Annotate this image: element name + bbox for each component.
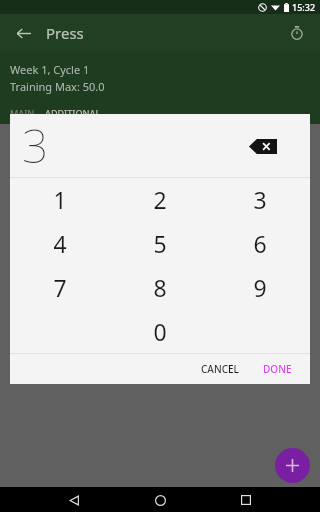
staticText: 8 — [153, 272, 167, 303]
staticText: 2 — [153, 184, 167, 215]
button[interactable]: 2 — [110, 178, 210, 221]
button[interactable]: 0 — [110, 309, 210, 353]
staticText: MAIN — [10, 107, 35, 119]
button[interactable]: 1 — [10, 178, 110, 221]
button[interactable]: Backspace — [246, 135, 280, 157]
staticText: 15:32 — [292, 1, 316, 13]
button[interactable]: Home — [148, 488, 172, 512]
button[interactable]: DONE — [259, 357, 296, 381]
staticText: Week 1, Cycle 1 — [10, 62, 90, 77]
staticText: 9 — [253, 272, 267, 303]
staticText: 3 — [22, 114, 49, 177]
button[interactable]: ADDITIONAL — [45, 107, 101, 124]
staticText: 1 — [53, 184, 67, 215]
button[interactable]: CANCEL — [193, 357, 247, 381]
staticText: DONE — [263, 362, 292, 376]
button[interactable]: 5 — [110, 221, 210, 265]
staticText: 3 — [253, 184, 267, 215]
staticText: CANCEL — [201, 362, 239, 376]
button[interactable]: Recents — [234, 488, 258, 512]
button[interactable]: 7 — [10, 265, 110, 309]
staticText: 7 — [53, 272, 67, 303]
staticText: 6 — [253, 228, 267, 259]
button[interactable]: 4 — [10, 221, 110, 265]
button[interactable]: 9 — [210, 265, 310, 309]
button[interactable]: Back — [10, 20, 36, 46]
button[interactable]: 8 — [110, 265, 210, 309]
staticText: Training Max: 50.0 — [10, 79, 105, 94]
button[interactable]: Back — [62, 488, 86, 512]
staticText: ADDITIONAL — [45, 107, 101, 119]
button[interactable]: 3 — [210, 178, 310, 221]
staticText: 4 — [53, 228, 67, 259]
staticText: 5 — [153, 228, 167, 259]
staticText: Press — [46, 23, 84, 43]
button[interactable]: Timer — [284, 20, 310, 46]
staticText: 0 — [153, 316, 167, 347]
button[interactable]: MAIN — [10, 107, 45, 124]
button[interactable]: Add — [275, 448, 310, 483]
button[interactable]: 6 — [210, 221, 310, 265]
